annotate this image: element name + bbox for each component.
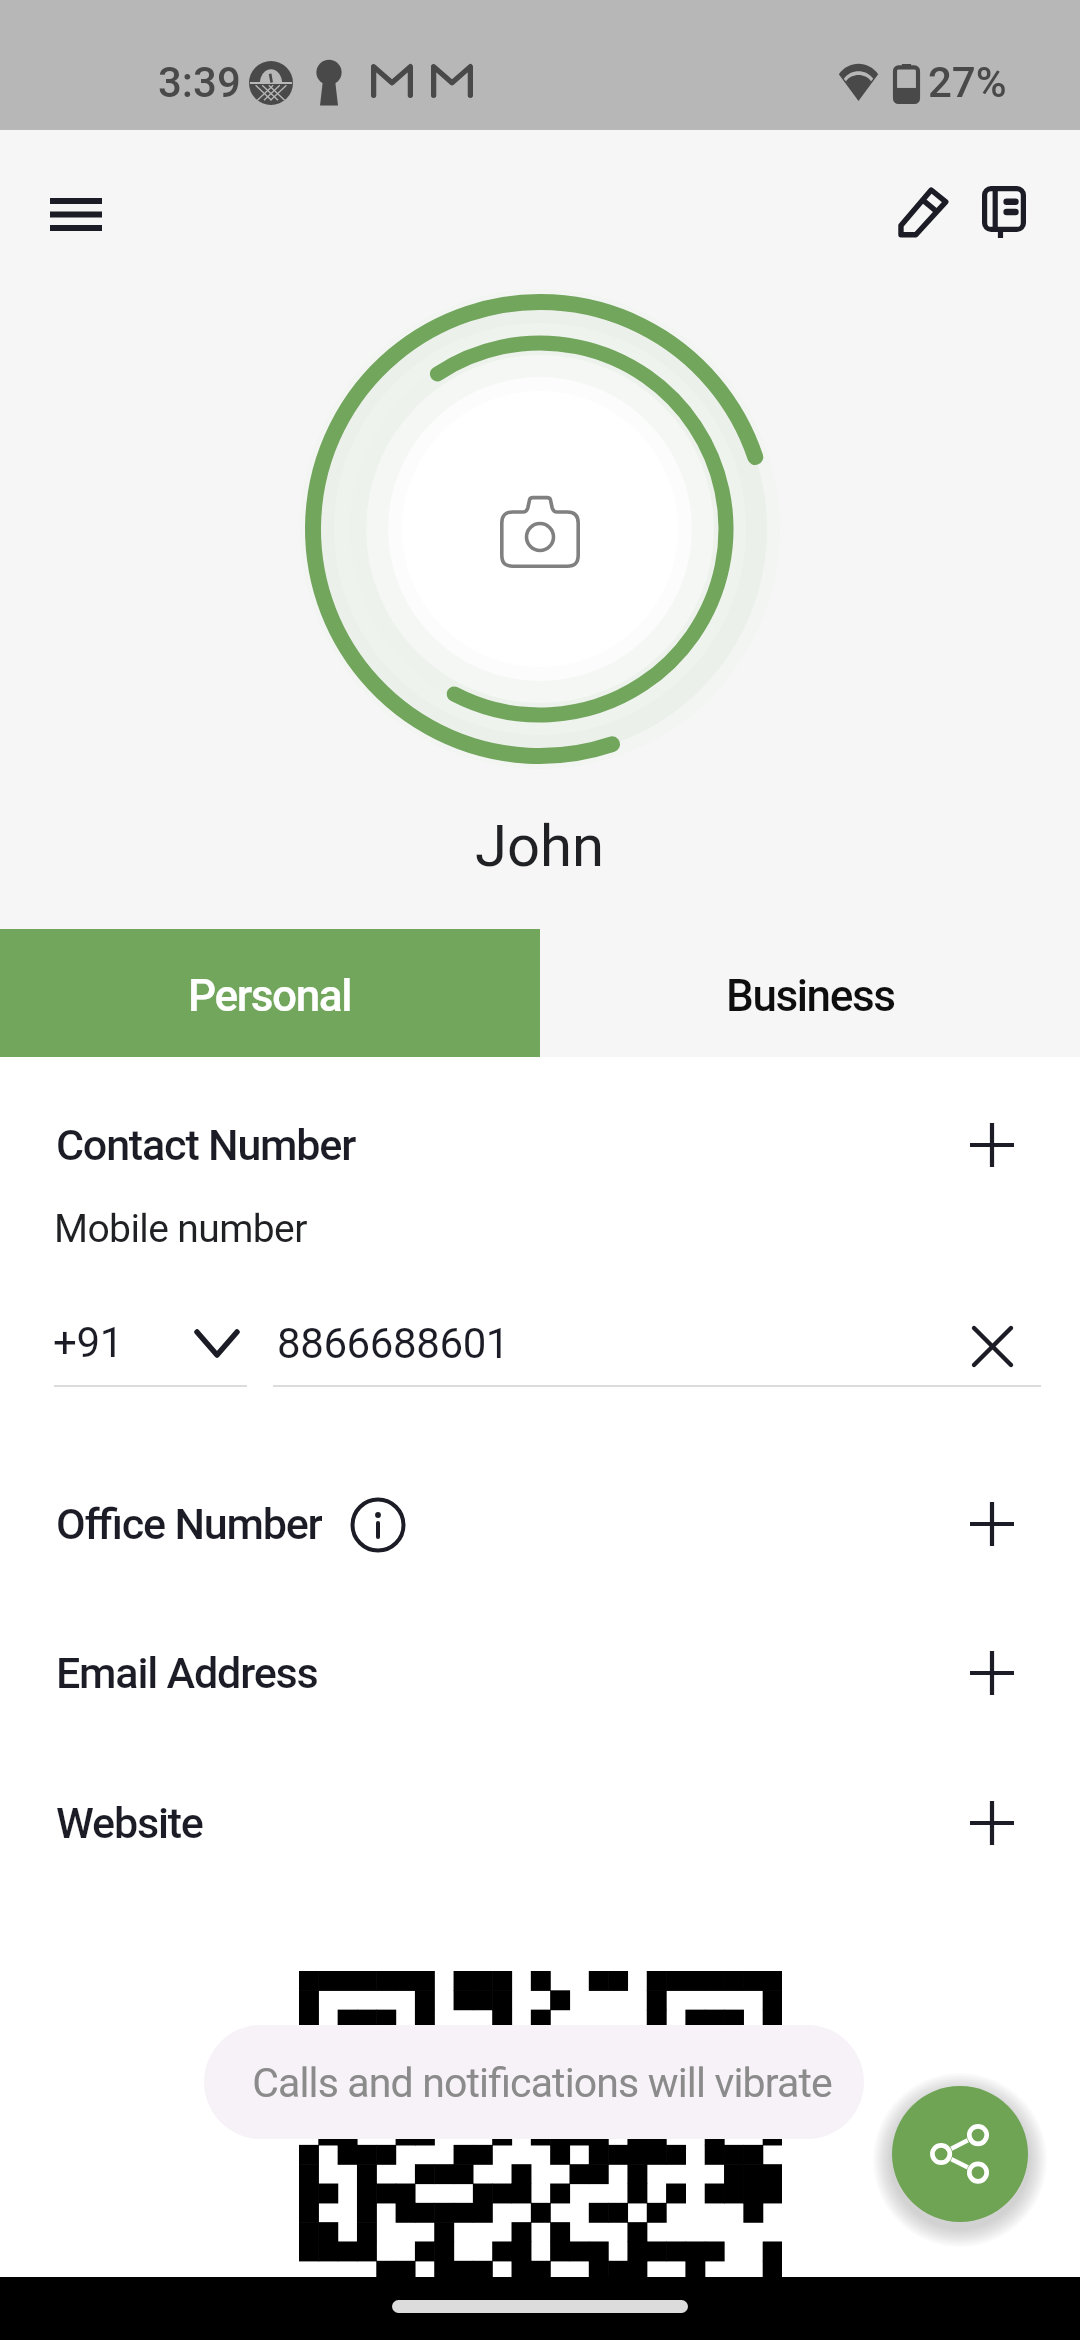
button[interactable]: Personal (0, 929, 540, 1057)
staticText: Contact Number (56, 1120, 356, 1170)
button[interactable]: Add photo (402, 391, 678, 667)
button[interactable]: +91 (53, 1306, 255, 1378)
staticText: Business (726, 970, 895, 1022)
button[interactable]: Add Contact Number (950, 1103, 1034, 1187)
button[interactable]: Contact Number (0, 1103, 1080, 1187)
button[interactable]: Website (0, 1781, 1080, 1865)
staticText: +91 (53, 1318, 123, 1367)
staticText: Website (56, 1798, 203, 1848)
button[interactable]: Edit (879, 164, 971, 256)
button[interactable]: Menu (26, 172, 126, 256)
button[interactable]: Contacts (958, 166, 1050, 258)
staticText: Mobile number (54, 1206, 307, 1252)
staticText: Office Number (56, 1499, 322, 1549)
button[interactable]: Add Email Address (950, 1631, 1034, 1715)
button[interactable]: Share (892, 2086, 1028, 2222)
button[interactable]: Business (540, 929, 1080, 1057)
button[interactable]: Office Number (0, 1482, 1080, 1566)
staticText: Email Address (56, 1648, 318, 1698)
staticText: Calls and notifications will vibrate (252, 2059, 832, 2107)
button[interactable]: Add Website (950, 1781, 1034, 1865)
button[interactable]: Email Address (0, 1631, 1080, 1715)
staticText: Personal (188, 970, 352, 1022)
button[interactable]: Add Office Number (950, 1482, 1034, 1566)
staticText: 3:39 (158, 58, 241, 107)
staticText: 8866688601 (277, 1319, 510, 1368)
staticText: 27% (928, 58, 1007, 107)
staticText: John (475, 812, 605, 880)
button[interactable]: Clear (952, 1306, 1032, 1386)
